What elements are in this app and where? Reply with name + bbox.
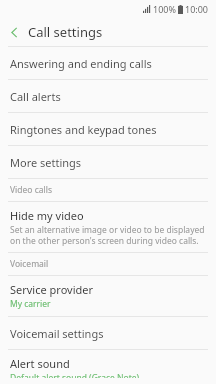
staticText: Service provider	[10, 282, 94, 297]
staticText: Default alert sound (Grace Note)	[10, 372, 140, 378]
staticText: Call settings	[28, 23, 103, 41]
staticText: My carrier	[10, 298, 51, 310]
button[interactable]: Hide my video	[0, 202, 216, 252]
button[interactable]: Ringtones and keypad tones	[0, 113, 216, 145]
button[interactable]: Service provider	[0, 276, 216, 316]
button[interactable]: Alert sound	[0, 350, 216, 384]
staticText: Voicemail	[10, 258, 49, 270]
staticText: Set an alternative image or video to be …	[10, 224, 206, 246]
staticText: More settings	[10, 155, 82, 170]
staticText: 100%	[153, 3, 176, 15]
button[interactable]: Voicemail settings	[0, 317, 216, 349]
staticText: Call alerts	[10, 89, 61, 104]
button[interactable]: Answering and ending calls	[0, 47, 216, 79]
staticText: 10:00	[185, 3, 209, 15]
button[interactable]: Back	[0, 18, 28, 46]
staticText: Video calls	[10, 184, 52, 196]
staticText: Voicemail settings	[10, 326, 104, 341]
staticText: Answering and ending calls	[10, 56, 152, 71]
staticText: Ringtones and keypad tones	[10, 122, 157, 137]
button[interactable]: More settings	[0, 146, 216, 178]
staticText: Alert sound	[10, 356, 70, 371]
button[interactable]: Call alerts	[0, 80, 216, 112]
staticText: Hide my video	[10, 208, 84, 223]
